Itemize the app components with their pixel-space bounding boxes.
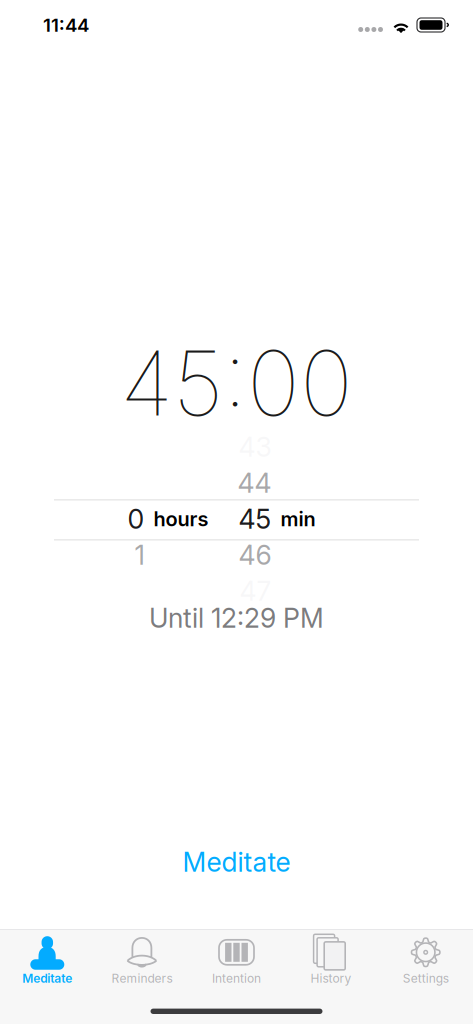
button[interactable]: Meditate xyxy=(0,935,95,985)
staticText: Settings xyxy=(403,971,449,985)
staticText: min xyxy=(280,507,315,531)
staticText: 46 xyxy=(238,539,271,571)
button[interactable]: Intention xyxy=(189,935,284,985)
staticText: History xyxy=(311,971,352,985)
staticText: Until 12:29 PM xyxy=(149,602,324,634)
button[interactable]: Settings xyxy=(378,935,473,985)
button[interactable]: History xyxy=(284,935,378,985)
staticText: Meditate xyxy=(22,971,72,985)
staticText: 11:44 xyxy=(43,14,89,36)
staticText: 0 xyxy=(127,503,144,535)
staticText: Meditate xyxy=(182,846,290,878)
button[interactable]: Meditate xyxy=(0,842,473,882)
button[interactable]: Reminders xyxy=(95,935,189,985)
staticText: 45:00 xyxy=(120,329,353,437)
staticText: hours xyxy=(153,507,208,531)
staticText: Intention xyxy=(212,971,261,985)
staticText: 1 xyxy=(134,539,144,571)
staticText: 45 xyxy=(238,503,271,535)
staticText: 44 xyxy=(237,467,271,499)
staticText: Reminders xyxy=(111,971,172,985)
